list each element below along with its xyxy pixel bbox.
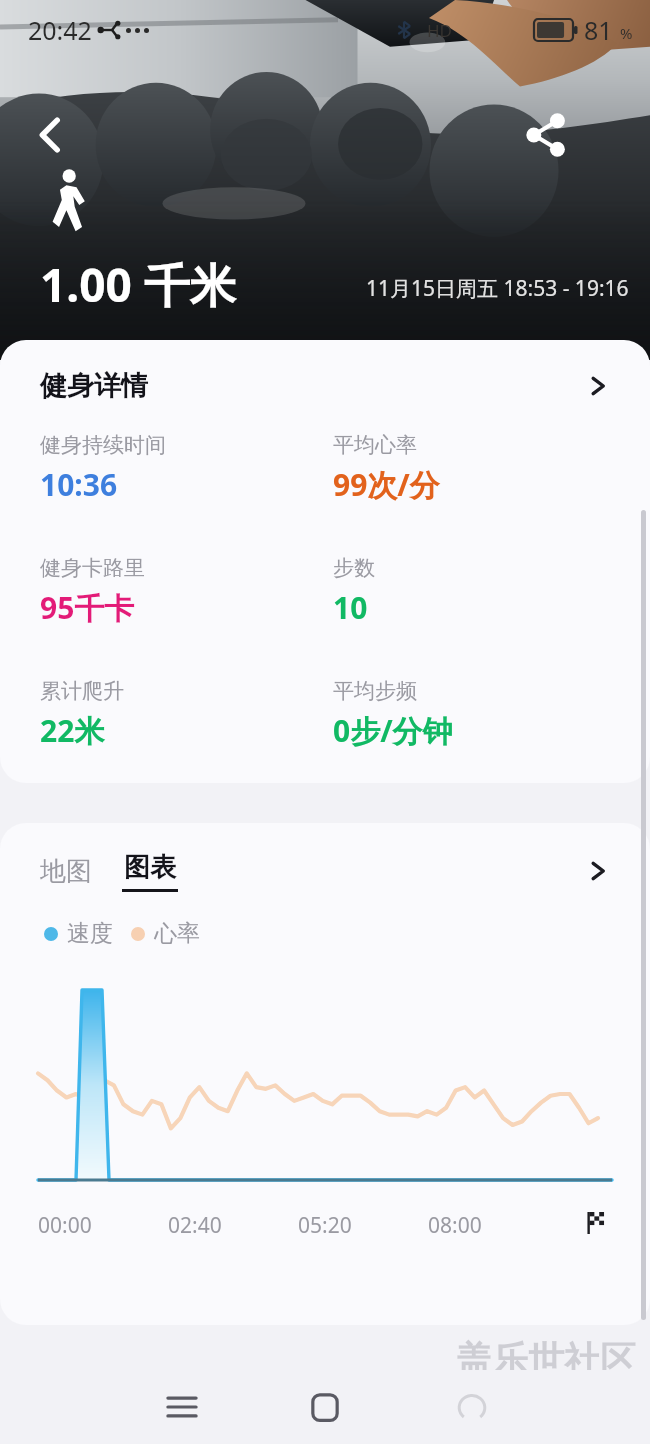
staticText: 图表 — [124, 851, 176, 884]
button[interactable]: 步数 — [333, 555, 650, 628]
staticText: 95千卡 — [40, 587, 135, 628]
staticText: 99次/分 — [333, 464, 440, 505]
staticText: 10:36 — [40, 464, 118, 505]
staticText: @huayingxiong — [412, 1390, 632, 1431]
staticText: 健身详情 — [40, 369, 148, 403]
button[interactable]: Back — [20, 104, 82, 166]
button[interactable]: 图表 — [122, 851, 178, 892]
button[interactable]: Back — [440, 1375, 504, 1439]
button[interactable]: More — [586, 859, 610, 883]
staticText: 11月15日周五 18:53 - 19:16 — [366, 274, 629, 303]
button[interactable]: Share — [514, 104, 576, 166]
button[interactable]: 累计爬升 — [40, 678, 325, 751]
staticText: 健身卡路里 — [40, 555, 145, 581]
button[interactable]: Home — [293, 1375, 357, 1439]
staticText: 0步/分钟 — [333, 710, 453, 751]
staticText: 81 — [584, 13, 613, 47]
staticText: 1.00 千米 — [40, 253, 236, 316]
staticText: 平均心率 — [333, 432, 417, 458]
staticText: 22米 — [40, 710, 105, 751]
button[interactable]: 健身详情 — [0, 340, 650, 432]
staticText: 速度 — [67, 919, 113, 948]
staticText: 盖乐世社区 — [456, 1337, 636, 1382]
button[interactable]: 地图 — [40, 855, 92, 888]
button[interactable]: 平均步频 — [333, 678, 650, 751]
staticText: 心率 — [154, 919, 200, 948]
button[interactable]: 健身持续时间 — [40, 432, 325, 505]
staticText: 05:20 — [298, 1211, 352, 1240]
staticText: % — [620, 23, 633, 43]
button[interactable]: Recents — [150, 1375, 214, 1439]
staticText: 健身持续时间 — [40, 432, 166, 458]
staticText: HD — [427, 19, 453, 42]
staticText: 10 — [333, 587, 368, 628]
staticText: 平均步频 — [333, 678, 417, 704]
staticText: 地图 — [40, 855, 92, 888]
staticText: 08:00 — [428, 1211, 482, 1240]
staticText: 20:42 — [28, 13, 92, 47]
button[interactable]: 平均心率 — [333, 432, 650, 505]
staticText: 02:40 — [168, 1211, 222, 1240]
button[interactable]: 健身卡路里 — [40, 555, 325, 628]
staticText: 累计爬升 — [40, 678, 124, 704]
staticText: 步数 — [333, 555, 375, 581]
staticText: 00:00 — [38, 1211, 92, 1240]
